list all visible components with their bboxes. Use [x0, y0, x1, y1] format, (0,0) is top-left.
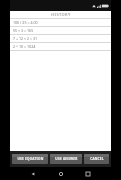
- button[interactable]: 2 ^ 10 = 1024: [10, 43, 111, 51]
- staticText: HISTORY: [51, 12, 71, 17]
- button[interactable]: CANCEL: [84, 154, 109, 164]
- staticText: USE EQUATION: [17, 157, 44, 161]
- button[interactable]: Recent apps: [83, 169, 93, 179]
- staticText: CANCEL: [90, 157, 104, 161]
- button[interactable]: 7 + 12 × 2 = 31: [10, 35, 111, 43]
- button[interactable]: USE EQUATION: [12, 154, 48, 164]
- staticText: 7 + 12 × 2 = 31: [13, 36, 38, 41]
- button[interactable]: Home: [56, 169, 66, 179]
- staticText: 2 ^ 10 = 1024: [13, 44, 36, 49]
- button[interactable]: 55 × 3 = 165: [10, 27, 111, 35]
- staticText: 100 / 25 = 4.00: [13, 20, 38, 25]
- button[interactable]: Back: [28, 169, 38, 179]
- button[interactable]: 100 / 25 = 4.00: [10, 19, 111, 27]
- button[interactable]: USE ANSWER: [50, 154, 82, 164]
- staticText: 55 × 3 = 165: [13, 28, 34, 33]
- staticText: USE ANSWER: [55, 157, 78, 161]
